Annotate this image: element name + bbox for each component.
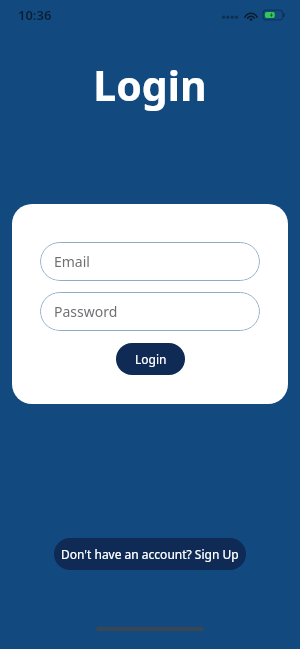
staticText: Email (54, 252, 90, 271)
button[interactable]: Password (40, 292, 260, 331)
staticText: Login (0, 57, 300, 113)
button[interactable]: Don't have an account? Sign Up (54, 538, 246, 570)
staticText: Login (135, 351, 167, 367)
staticText: Don't have an account? Sign Up (61, 546, 239, 562)
staticText: 10:36 (18, 6, 52, 24)
button[interactable]: Email (40, 242, 260, 281)
staticText: Password (54, 302, 118, 321)
button[interactable]: Login (116, 343, 185, 375)
